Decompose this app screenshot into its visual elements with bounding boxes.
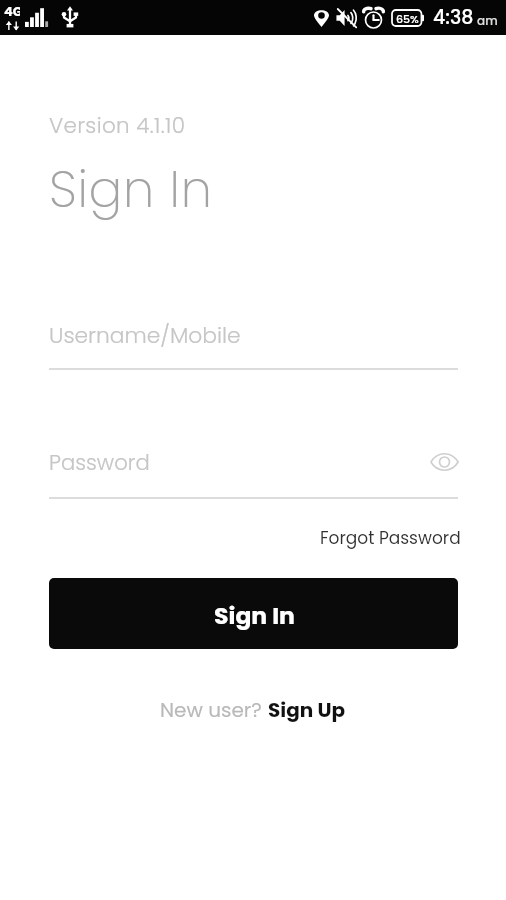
- staticText: am: [477, 12, 498, 29]
- staticText: New user?: [160, 696, 268, 724]
- staticText: Sign In: [214, 599, 295, 632]
- staticText: Version 4.1.10: [49, 110, 186, 140]
- button[interactable]: Sign In: [49, 578, 458, 649]
- staticText: Username/Mobile: [49, 320, 241, 351]
- button[interactable]: Forgot Password: [318, 524, 463, 552]
- staticText: 65%: [396, 11, 419, 26]
- staticText: Password: [49, 448, 150, 478]
- staticText: 4G: [4, 2, 20, 20]
- button[interactable]: Show password: [428, 447, 460, 477]
- staticText: Sign In: [49, 155, 213, 225]
- staticText: 4:38: [433, 4, 474, 31]
- button[interactable]: Sign Up: [268, 696, 346, 724]
